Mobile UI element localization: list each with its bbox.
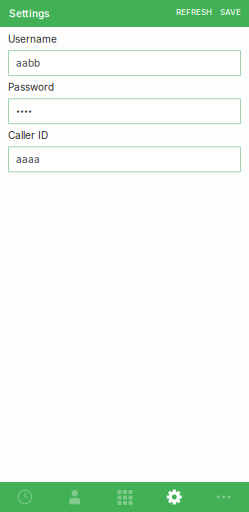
button[interactable]: REFRESH xyxy=(168,4,214,23)
staticText: Username xyxy=(8,33,57,45)
button[interactable]: aaaa xyxy=(8,146,241,172)
staticText: Settings xyxy=(9,7,49,20)
button[interactable]: More xyxy=(199,482,249,512)
staticText: Caller ID xyxy=(8,129,48,141)
staticText: Password xyxy=(8,81,54,93)
button[interactable]: Keypad xyxy=(100,482,149,512)
staticText: REFRESH xyxy=(176,7,212,17)
button[interactable]: aabb xyxy=(8,50,241,76)
button[interactable]: Contacts xyxy=(50,482,100,512)
button[interactable]: Recents xyxy=(0,482,50,512)
button[interactable]: •••• xyxy=(8,98,241,124)
staticText: •••• xyxy=(16,107,32,116)
staticText: aabb xyxy=(16,57,40,69)
button[interactable]: Settings xyxy=(149,482,199,512)
button[interactable]: SAVE xyxy=(214,4,245,23)
staticText: aaaa xyxy=(16,153,40,165)
staticText: SAVE xyxy=(220,7,241,17)
